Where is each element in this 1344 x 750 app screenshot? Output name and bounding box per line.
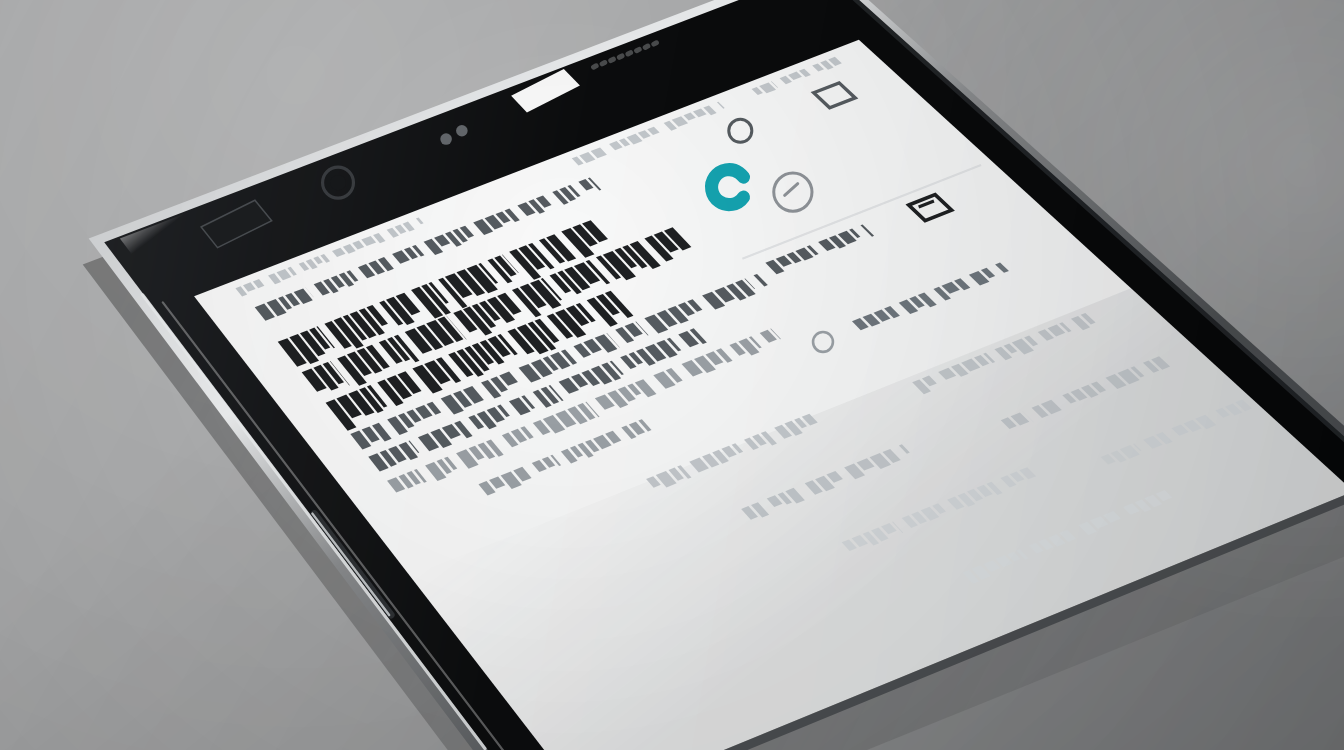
button[interactable]: Phone screen content <box>0 0 1344 750</box>
